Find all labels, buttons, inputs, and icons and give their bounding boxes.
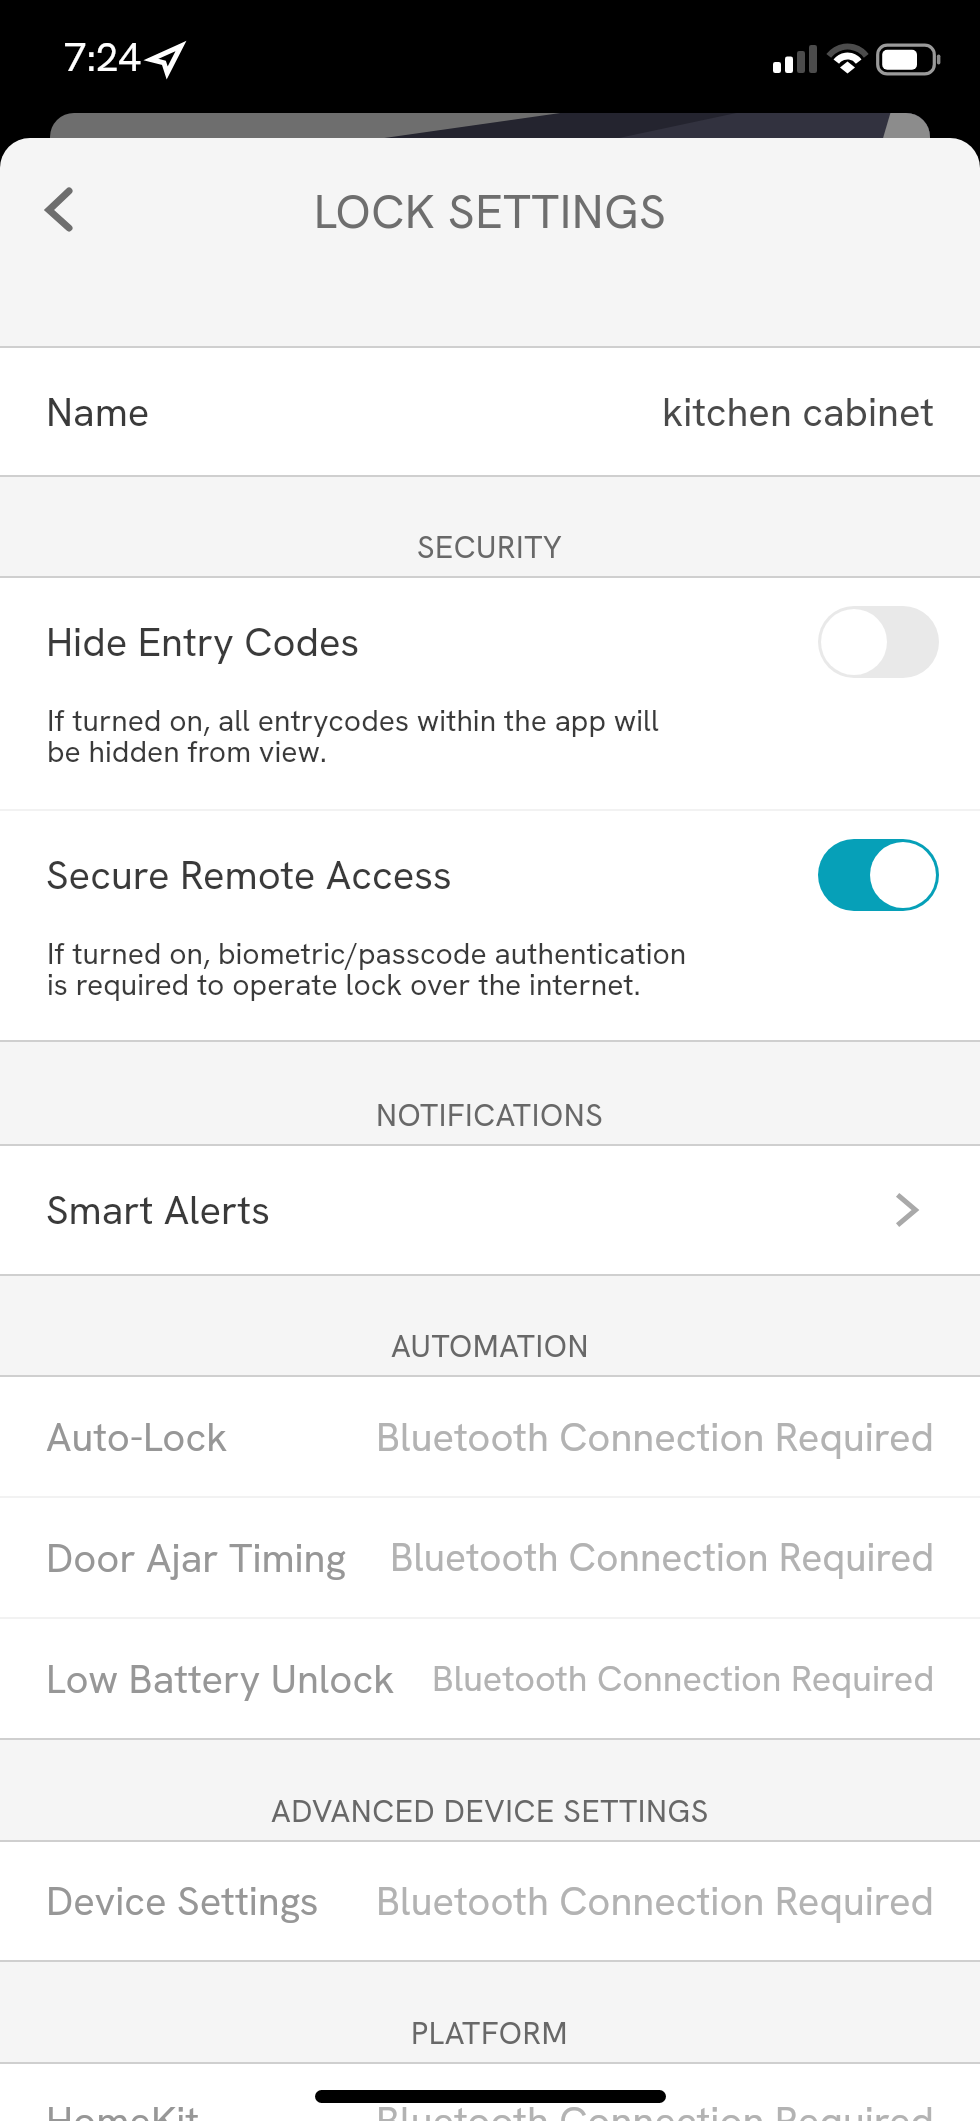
staticText: NOTIFICATIONS xyxy=(376,1095,604,1135)
staticText: Bluetooth Connection Required xyxy=(390,1532,935,1583)
staticText: Bluetooth Connection Required xyxy=(376,1411,935,1463)
button[interactable]: Door Ajar Timing xyxy=(0,1498,980,1617)
button[interactable]: Low Battery Unlock xyxy=(0,1619,980,1738)
staticText: Low Battery Unlock xyxy=(46,1653,395,1705)
button[interactable]: Hide Entry Codes xyxy=(0,578,980,809)
staticText: Auto-Lock xyxy=(46,1411,228,1463)
button[interactable]: Secure Remote Access xyxy=(0,811,980,1040)
staticText: Device Settings xyxy=(46,1875,319,1927)
button[interactable]: On xyxy=(818,839,939,911)
staticText: Name xyxy=(46,386,150,438)
staticText: PLATFORM xyxy=(411,2013,569,2053)
button[interactable]: Auto-Lock xyxy=(0,1377,980,1496)
button[interactable]: Back xyxy=(20,158,100,238)
staticText: If turned on, all entrycodes within the … xyxy=(47,701,659,771)
button[interactable]: Name xyxy=(0,348,980,475)
staticText: Secure Remote Access xyxy=(46,849,452,901)
staticText: HomeKit xyxy=(46,2095,200,2121)
staticText: Door Ajar Timing xyxy=(46,1532,347,1584)
button[interactable]: Smart Alerts xyxy=(0,1146,980,1274)
staticText: LOCK SETTINGS xyxy=(0,181,980,242)
staticText: Smart Alerts xyxy=(46,1184,270,1236)
staticText: 7:24 xyxy=(64,31,141,83)
button[interactable]: Off xyxy=(818,606,939,678)
staticText: Bluetooth Connection Required xyxy=(376,1875,935,1927)
staticText: SECURITY xyxy=(417,527,563,567)
staticText: If turned on, biometric/passcode authent… xyxy=(47,934,687,1004)
button[interactable]: HomeKit xyxy=(0,2064,980,2121)
staticText: Hide Entry Codes xyxy=(46,616,360,668)
staticText: kitchen cabinet xyxy=(662,386,935,438)
button[interactable]: Device Settings xyxy=(0,1842,980,1960)
staticText: ADVANCED DEVICE SETTINGS xyxy=(271,1791,709,1831)
staticText: Bluetooth Connection Required xyxy=(432,1655,935,1702)
staticText: Bluetooth Connection Required xyxy=(376,2095,935,2121)
staticText: AUTOMATION xyxy=(391,1326,590,1366)
